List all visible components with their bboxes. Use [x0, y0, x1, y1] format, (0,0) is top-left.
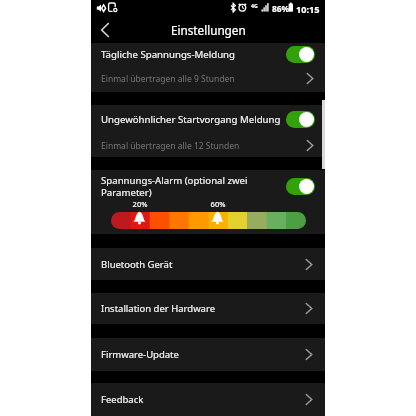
staticText: Bluetooth Gerät: [101, 258, 305, 271]
button[interactable]: Firmware-Update: [91, 338, 325, 371]
button[interactable]: Bluetooth Gerät: [91, 248, 325, 280]
button[interactable]: Einmal übertragen alle 12 Stunden: [91, 134, 325, 157]
staticText: Ungewöhnlicher Startvorgang Meldung: [101, 113, 283, 126]
button[interactable]: Ungewöhnlicher Startvorgang Meldung: [91, 105, 325, 134]
staticText: Installation der Hardware: [101, 302, 305, 315]
staticText: Einstellungen: [171, 22, 246, 38]
button[interactable]: Feedback: [91, 383, 325, 416]
staticText: Tägliche Spannungs-Meldung: [101, 48, 283, 61]
staticText: Firmware-Update: [101, 348, 305, 361]
staticText: 86%: [272, 3, 290, 14]
staticText: 10:15: [296, 3, 320, 16]
button[interactable]: Toggle: [286, 46, 315, 63]
button[interactable]: Spannungs-Alarm (optional zwei Parameter…: [91, 170, 325, 202]
button[interactable]: Alarm range: [111, 212, 306, 229]
button[interactable]: Toggle: [286, 111, 315, 128]
button[interactable]: Toggle: [286, 178, 315, 195]
staticText: 20%: [130, 199, 150, 209]
button[interactable]: Installation der Hardware: [91, 293, 325, 324]
staticText: Spannungs-Alarm (optional zwei Parameter…: [101, 174, 283, 199]
button[interactable]: Einmal übertragen alle 9 Stunden: [91, 65, 325, 92]
staticText: 4G: [251, 2, 258, 9]
staticText: Einmal übertragen alle 12 Stunden: [101, 140, 306, 152]
staticText: Feedback: [101, 393, 305, 406]
staticText: 60%: [208, 199, 228, 209]
button[interactable]: Tägliche Spannungs-Meldung: [91, 43, 325, 65]
button[interactable]: Back: [93, 18, 117, 42]
staticText: Einmal übertragen alle 9 Stunden: [101, 73, 306, 85]
